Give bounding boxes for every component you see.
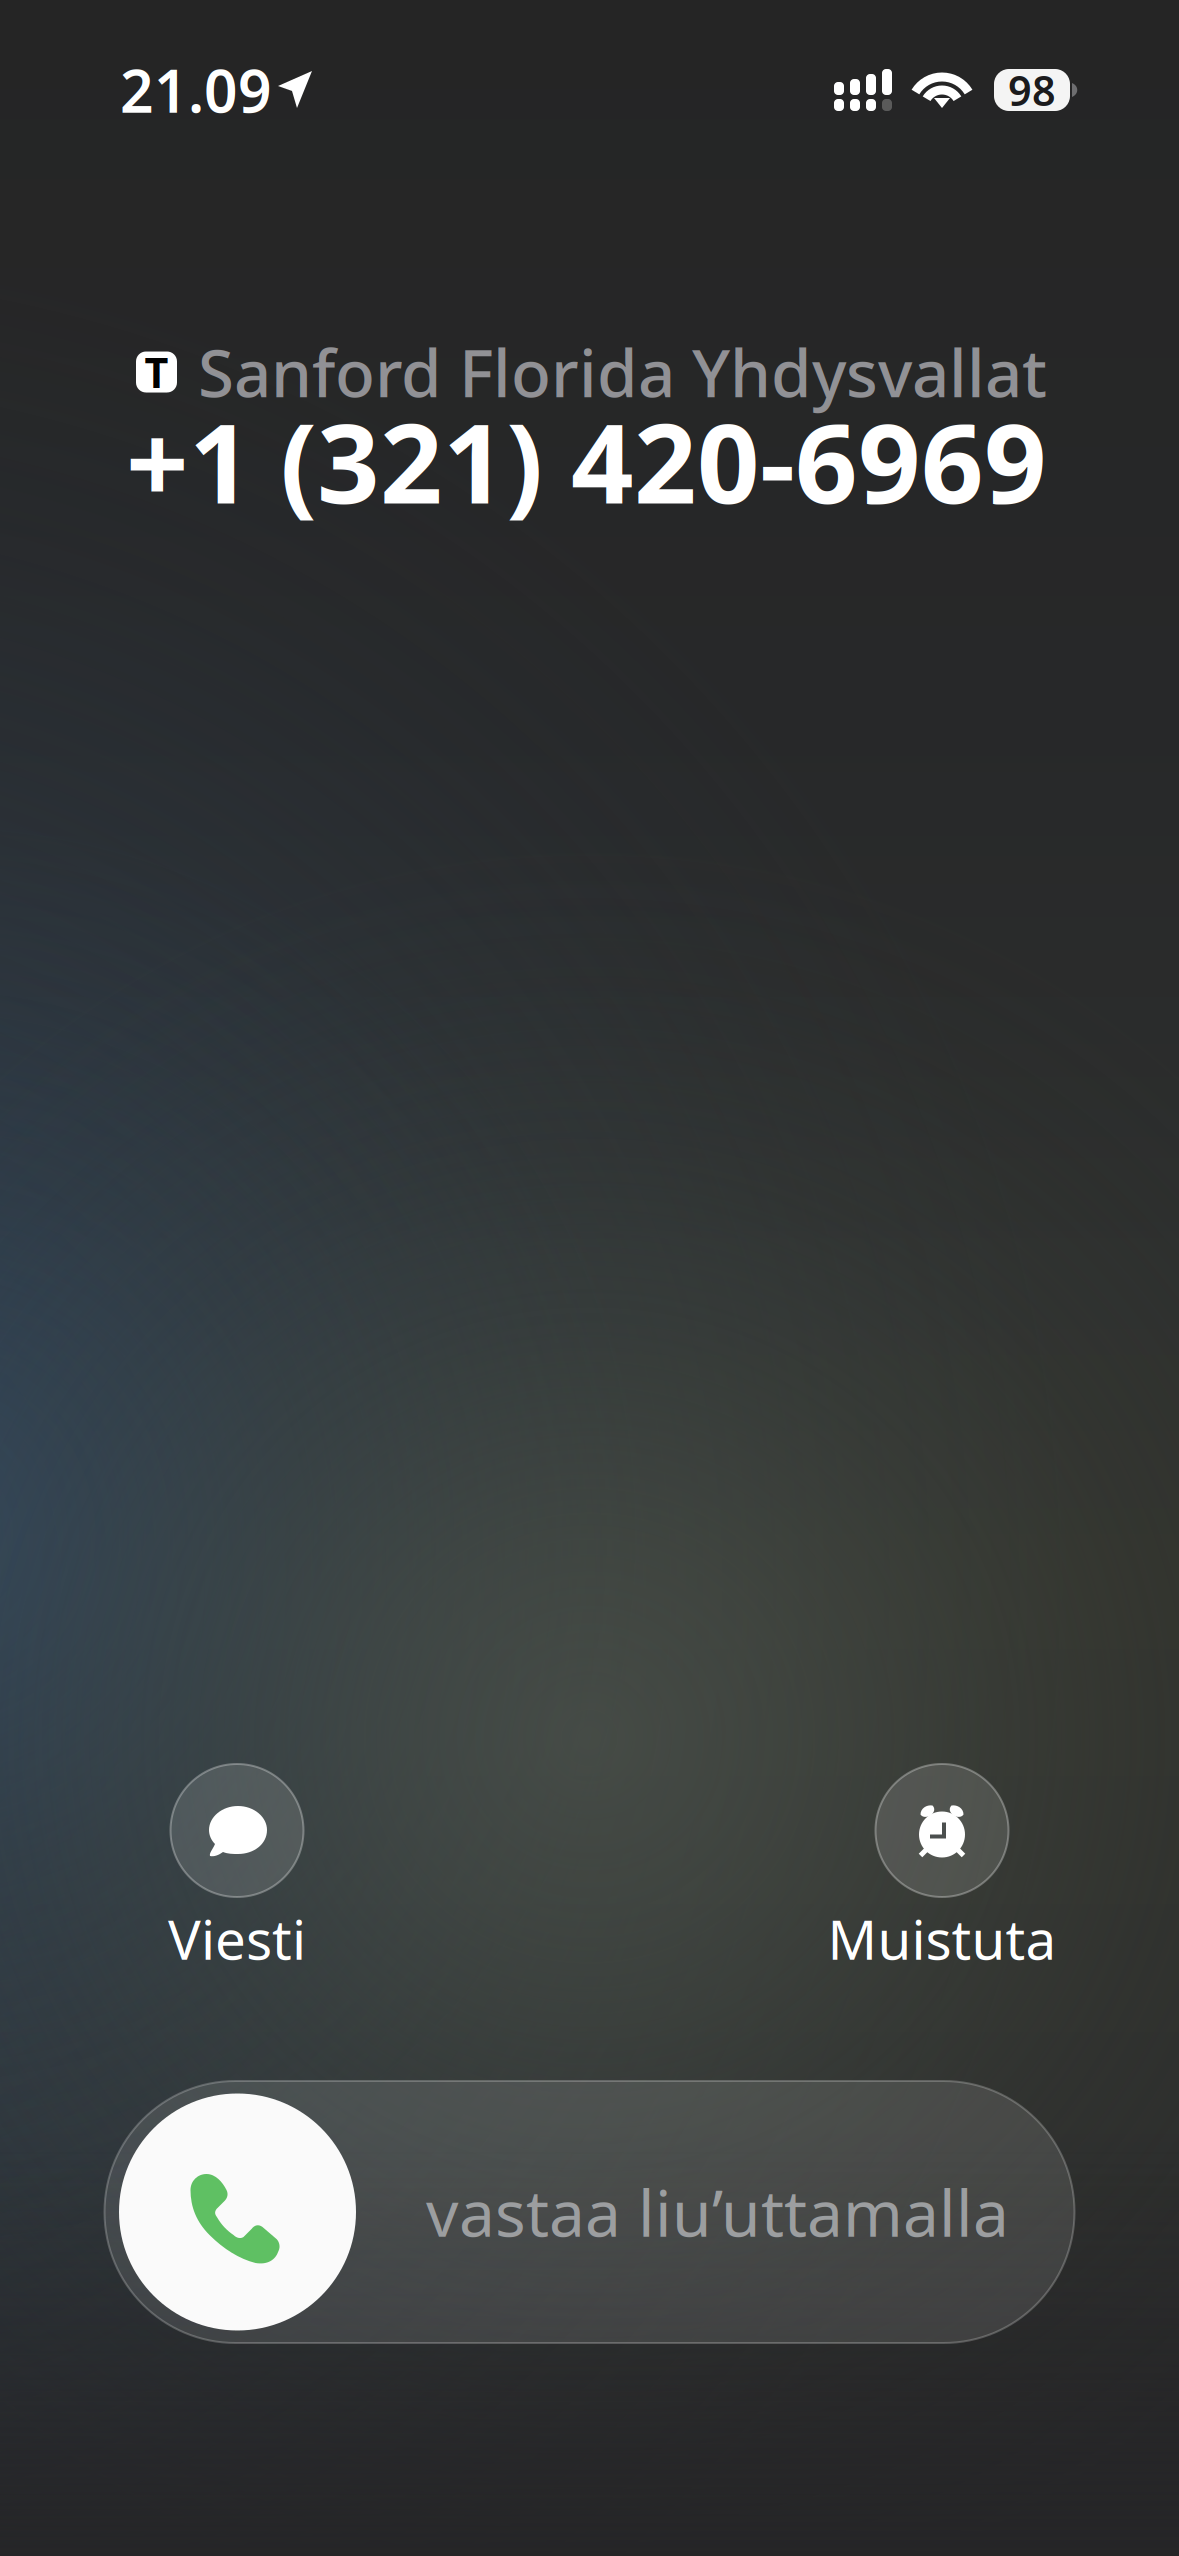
staticText: 21.09 (120, 51, 272, 129)
button[interactable]: Viesti (87, 1797, 387, 1992)
staticText: Sanford Florida Yhdysvallat (198, 329, 1047, 415)
staticText: Viesti (168, 1902, 306, 1975)
staticText: +1 (321) 420-6969 (126, 388, 1047, 534)
button[interactable]: Muistuta (792, 1797, 1092, 1992)
staticText: Muistuta (827, 1902, 1056, 1975)
staticText: T (144, 345, 168, 399)
staticText: vastaa liu’uttamalla (426, 2169, 1009, 2254)
button[interactable]: Vastaa (104, 2081, 1074, 2343)
staticText: 98 (1008, 63, 1056, 117)
